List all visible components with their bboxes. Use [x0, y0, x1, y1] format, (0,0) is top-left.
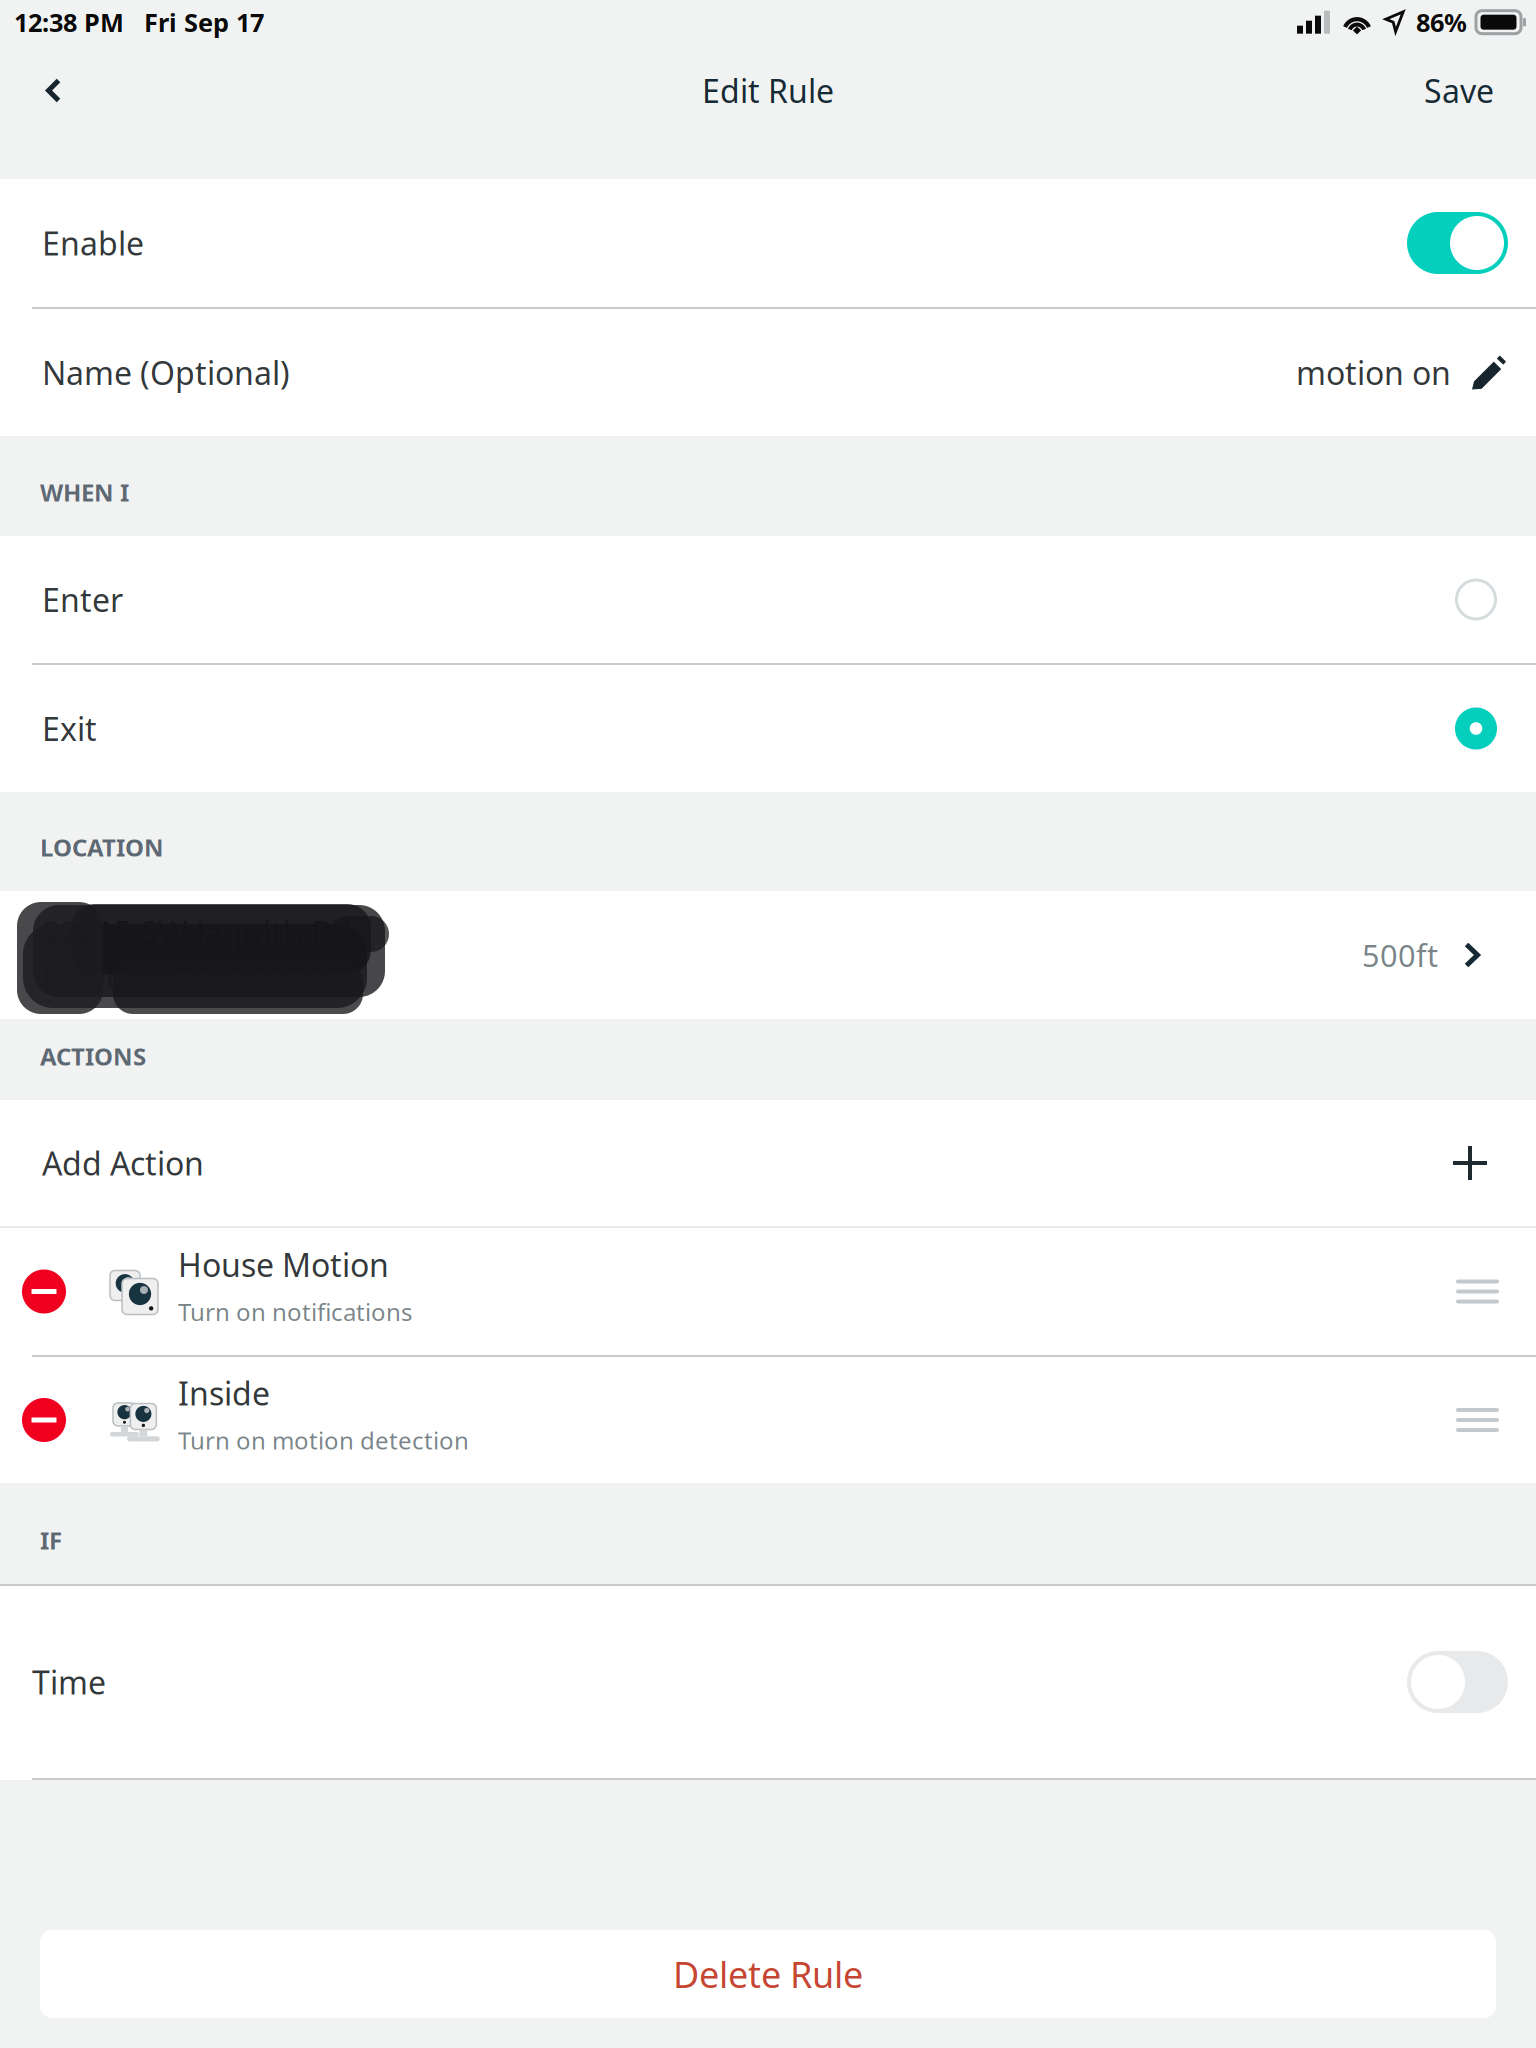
staticText: 22215 SW Jaquith Rd: [42, 911, 351, 954]
staticText: Newberg, OR 97132: [42, 958, 330, 999]
staticText: IF: [40, 1524, 62, 1556]
staticText: motion on: [1296, 351, 1451, 394]
button[interactable]: Enter: [0, 536, 1536, 663]
staticText: 86%: [1416, 5, 1467, 39]
staticText: Enter: [42, 578, 123, 621]
staticText: 500ft: [1362, 935, 1438, 975]
staticText: Save: [1424, 69, 1494, 112]
button[interactable]: House Motion: [0, 1228, 1536, 1355]
staticText: Inside: [178, 1372, 270, 1414]
staticText: Name (Optional): [42, 351, 290, 394]
staticText: LOCATION: [40, 831, 164, 863]
button[interactable]: Name (Optional): [0, 309, 1536, 436]
button[interactable]: Exit: [0, 665, 1536, 792]
staticText: Fri Sep 17: [144, 5, 264, 39]
button[interactable]: 22215 SW Jaquith Rd: [0, 891, 1536, 1019]
button[interactable]: Save: [1390, 59, 1536, 122]
staticText: Exit: [42, 707, 97, 750]
button[interactable]: Time: [0, 1586, 1536, 1778]
button[interactable]: Add Action: [0, 1100, 1536, 1226]
staticText: Turn on notifications: [178, 1296, 412, 1328]
button[interactable]: Inside: [0, 1357, 1536, 1483]
staticText: 12:38 PM: [14, 5, 124, 39]
staticText: Time: [32, 1661, 106, 1703]
button[interactable]: Back: [0, 68, 95, 113]
staticText: Edit Rule: [702, 69, 834, 112]
button[interactable]: Enable: [0, 179, 1536, 307]
staticText: House Motion: [178, 1243, 389, 1286]
staticText: Add Action: [42, 1142, 204, 1184]
staticText: WHEN I: [40, 476, 129, 508]
staticText: Delete Rule: [673, 1950, 863, 1998]
staticText: ACTIONS: [40, 1040, 146, 1072]
staticText: Turn on motion detection: [178, 1424, 469, 1456]
staticText: Enable: [42, 222, 144, 264]
button[interactable]: Delete Rule: [40, 1930, 1496, 2018]
